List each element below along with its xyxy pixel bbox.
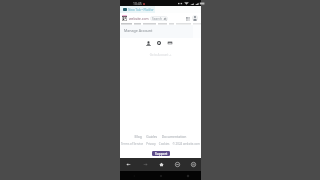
button[interactable]: Recents	[174, 171, 201, 180]
staticText: website.com	[129, 16, 149, 20]
button[interactable]: Back	[120, 158, 137, 171]
button[interactable]: Apps	[185, 16, 190, 21]
button[interactable]: Menu	[185, 158, 201, 171]
staticText: Go to Account →	[120, 53, 201, 57]
staticText: Search	[152, 17, 162, 21]
button[interactable]: Tabs	[169, 158, 185, 171]
button[interactable]: Payments	[167, 40, 173, 46]
button[interactable]: Account	[192, 15, 198, 21]
button[interactable]: Forward	[137, 158, 153, 171]
staticText: Blog Guides Documentation	[120, 134, 201, 139]
button[interactable]: Search	[150, 16, 168, 21]
staticText: Terms of Service Privacy Cookies © 2024 …	[120, 142, 201, 146]
staticText: New Tab • Platfor	[128, 8, 154, 12]
staticText: 10:45	[133, 1, 142, 6]
button[interactable]: Support	[152, 151, 170, 156]
staticText: Support	[155, 152, 168, 156]
button[interactable]: Personal info	[145, 40, 151, 46]
button[interactable]: Security	[156, 40, 162, 46]
button[interactable]: Home	[153, 158, 169, 171]
staticText: Manage Account	[124, 28, 153, 33]
